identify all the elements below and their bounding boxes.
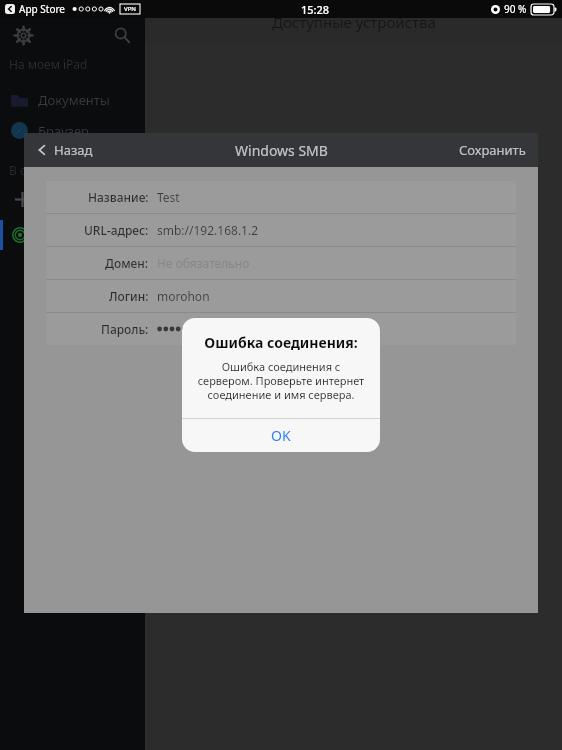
staticText: smb://192.168.1.1 <box>24 431 538 447</box>
staticText: Не обязательно <box>157 255 250 271</box>
button[interactable]: OK <box>182 419 380 452</box>
staticText: На моем iPad <box>9 56 88 72</box>
staticText: OK <box>271 426 291 445</box>
staticText: Ошибка соединения с сервером. Проверьте … <box>196 359 366 402</box>
button[interactable]: Назад <box>24 133 103 167</box>
staticText: Документы <box>38 91 110 109</box>
button[interactable]: URL-адрес: <box>46 214 516 246</box>
staticText: morohon <box>157 288 210 304</box>
staticText: Пароль: <box>101 321 149 337</box>
button[interactable]: Логин: <box>46 280 516 312</box>
staticText: В об <box>9 162 35 178</box>
button[interactable] <box>0 220 145 250</box>
staticText: Логин: <box>109 288 149 304</box>
button[interactable]: Пароль: <box>46 313 516 345</box>
button[interactable]: Домен: <box>46 247 516 279</box>
staticText: Доступные устройства <box>272 12 436 32</box>
staticText: Название: <box>88 189 149 205</box>
staticText: Test <box>157 189 180 205</box>
staticText: 15:28 <box>301 2 330 17</box>
staticText: VPN <box>124 5 137 13</box>
button[interactable]: Search <box>109 22 135 48</box>
staticText: URL-адрес: <box>84 222 149 238</box>
staticText: 90 % <box>504 2 527 16</box>
staticText: Windows SMB <box>235 141 328 160</box>
staticText: Домен: <box>105 255 149 271</box>
staticText: smb://server/path <box>24 412 538 428</box>
button[interactable]: Документы <box>11 84 145 115</box>
button[interactable]: Браузер <box>11 115 145 146</box>
button[interactable]: Сохранить <box>447 133 538 167</box>
button[interactable]: Settings <box>10 22 36 48</box>
staticText: Браузер <box>38 122 90 140</box>
staticText: smb://192.168.1.2 <box>157 222 259 238</box>
button[interactable]: Add <box>11 188 33 210</box>
staticText: Назад <box>54 141 93 159</box>
button[interactable]: Название: <box>46 181 516 213</box>
staticText: Сохранить <box>459 141 526 159</box>
staticText: App Store <box>19 2 66 16</box>
staticText: Ошибка соединения: <box>190 333 372 352</box>
